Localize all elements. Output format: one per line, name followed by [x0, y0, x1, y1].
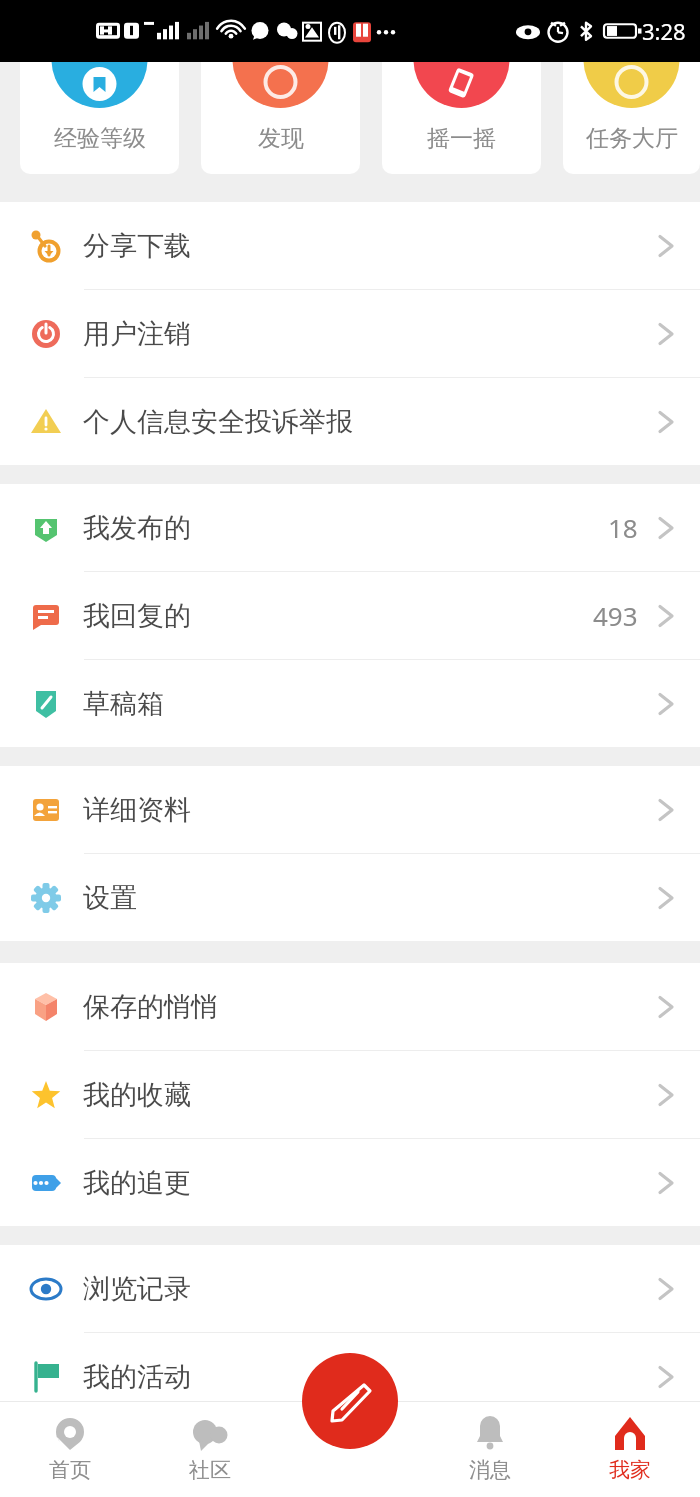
- button[interactable]: 发现: [201, 62, 360, 174]
- staticText: 浏览记录: [83, 1272, 191, 1306]
- staticText: 经验等级: [54, 124, 146, 153]
- staticText: 消息: [469, 1457, 511, 1483]
- staticText: 分享下载: [83, 229, 191, 263]
- staticText: 任务大厅: [586, 124, 678, 153]
- button[interactable]: 详细资料: [0, 766, 700, 853]
- button[interactable]: 社区: [140, 1401, 280, 1497]
- button[interactable]: Compose: [302, 1353, 398, 1449]
- button[interactable]: 我发布的: [0, 484, 700, 571]
- button[interactable]: 摇一摇: [382, 62, 541, 174]
- staticText: 设置: [83, 881, 137, 915]
- staticText: 我的收藏: [83, 1078, 191, 1112]
- staticText: 草稿箱: [83, 687, 164, 721]
- button[interactable]: 草稿箱: [0, 660, 700, 747]
- button[interactable]: 设置: [0, 854, 700, 941]
- button[interactable]: 用户注销: [0, 290, 700, 377]
- staticText: 个人信息安全投诉举报: [83, 405, 353, 439]
- button[interactable]: 我的追更: [0, 1139, 700, 1226]
- staticText: 用户注销: [83, 317, 191, 351]
- staticText: 3:28: [642, 16, 686, 46]
- button[interactable]: 我家: [560, 1401, 700, 1497]
- staticText: 详细资料: [83, 793, 191, 827]
- staticText: 我回复的: [83, 599, 191, 633]
- staticText: 首页: [49, 1457, 91, 1483]
- button[interactable]: 消息: [420, 1401, 560, 1497]
- staticText: 我的活动: [83, 1360, 191, 1394]
- staticText: 摇一摇: [427, 124, 496, 153]
- staticText: 保存的悄悄: [83, 990, 218, 1024]
- button[interactable]: 我的收藏: [0, 1051, 700, 1138]
- button[interactable]: 保存的悄悄: [0, 963, 700, 1050]
- staticText: 493: [593, 598, 638, 633]
- staticText: 发现: [258, 124, 304, 153]
- button[interactable]: 经验等级: [20, 62, 179, 174]
- staticText: 18: [608, 510, 638, 545]
- button[interactable]: 个人信息安全投诉举报: [0, 378, 700, 465]
- button[interactable]: 首页: [0, 1401, 140, 1497]
- staticText: 我发布的: [83, 511, 191, 545]
- button[interactable]: 浏览记录: [0, 1245, 700, 1332]
- button[interactable]: 我回复的: [0, 572, 700, 659]
- button[interactable]: 任务大厅: [563, 62, 700, 174]
- button[interactable]: 我的活动: [0, 1333, 700, 1420]
- staticText: 社区: [189, 1457, 231, 1483]
- staticText: 我的追更: [83, 1166, 191, 1200]
- staticText: 我家: [609, 1457, 651, 1483]
- button[interactable]: 分享下载: [0, 202, 700, 289]
